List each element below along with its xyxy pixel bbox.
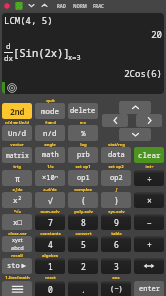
button[interactable]: − [134,214,164,230]
other: Scroll down [27,1,36,10]
staticText: 20 [2,28,162,40]
staticText: num-solv [40,209,60,215]
button[interactable]: % [68,125,98,141]
button[interactable]: 4 [35,236,65,252]
staticText: set op1 [75,164,91,170]
staticText: LCM(4, 5) [4,14,53,26]
staticText: quit [46,98,55,104]
button[interactable]: delete [68,103,98,119]
staticText: 2Cos(6) [2,67,162,79]
button[interactable]: x□ [2,214,32,230]
staticText: NORM [73,3,87,9]
staticText: int÷ [145,164,154,170]
staticText: n/d◄►Un/d [5,120,29,126]
staticText: x=3 [68,53,81,63]
button[interactable]: 0 [35,281,65,296]
staticText: 5 [81,239,86,250]
button[interactable]: math [35,147,65,163]
button[interactable]: 8 [68,214,98,230]
button[interactable]: op2 [101,170,131,186]
button[interactable]: ) [101,192,131,208]
button[interactable]: clear [134,147,164,163]
staticText: 6 [114,239,119,250]
staticText: abcd [11,244,24,252]
button[interactable]: Un/d [2,125,32,141]
button[interactable]: matrix [2,147,32,163]
button[interactable]: prb [68,147,98,163]
button[interactable]: op1 [68,170,98,186]
staticText: reset [45,275,56,281]
staticText: − [147,217,152,228]
staticText: FRAC [93,3,104,9]
staticText: x² [13,195,22,205]
button[interactable]: + [134,236,164,252]
staticText: constants [40,231,61,237]
button[interactable]: 2nd [2,103,32,119]
button[interactable]: enter [134,281,164,296]
button[interactable]: 9 [101,214,131,230]
staticText: n/d [43,128,57,138]
staticText: clear-var [8,231,27,237]
staticText: 7 [48,217,53,228]
staticText: × [147,195,152,206]
staticText: ∫ [115,187,118,192]
button[interactable]: π [2,170,32,186]
staticText: vector [10,142,24,148]
button[interactable]: (−) [101,281,131,296]
staticText: 2 [81,261,86,272]
staticText: 0 [48,284,53,295]
other: Scroll up [40,1,49,10]
staticText: data [108,150,125,160]
button[interactable]: History [7,83,17,93]
staticText: 8 [81,217,86,228]
staticText: 3 [114,261,119,272]
button[interactable]: √ [35,192,65,208]
staticText: log [80,142,87,148]
staticText: [Sin(2x)] [13,46,70,60]
staticText: + [147,239,152,250]
staticText: 9 [114,217,119,228]
staticText: complex [74,187,92,193]
button[interactable]: 3 [101,258,131,274]
button[interactable]: mode [35,103,65,119]
button[interactable]: data [101,147,131,163]
button[interactable]: Toggle mathprint [2,281,32,296]
button[interactable]: 1 [35,258,65,274]
staticText: dx [4,53,13,63]
button[interactable]: 5 [68,236,98,252]
staticText: ⁿ√x [14,209,21,215]
staticText: op1 [77,173,90,183]
button[interactable]: Left [102,114,128,127]
button[interactable]: Toggle answer [134,258,164,274]
button[interactable]: ( [68,192,98,208]
staticText: 1 [48,261,53,272]
button[interactable]: Up [119,101,151,114]
button[interactable]: Down [119,128,151,141]
staticText: prb [77,150,90,160]
button[interactable]: ×10ⁿ [35,170,65,186]
staticText: 1-line/math [5,275,30,281]
staticText: ÷ [147,173,152,184]
button[interactable]: 6 [101,236,131,252]
button[interactable]: xyzt [2,236,32,252]
staticText: % [81,128,86,138]
button[interactable]: × [134,192,164,208]
button[interactable]: ÷ [134,170,164,186]
staticText: ►x [80,120,86,126]
staticText: mode [41,106,59,116]
button[interactable]: x² [2,192,32,208]
staticText: f◄►d [45,120,56,126]
button[interactable]: 2 [68,258,98,274]
button[interactable]: 7 [35,214,65,230]
staticText: stat/reg [108,142,125,148]
button[interactable]: . [68,281,98,296]
staticText: angle [44,142,56,148]
button[interactable]: Right [136,114,162,127]
button[interactable]: n/d [35,125,65,141]
staticText: recall [11,253,23,259]
staticText: d [6,41,11,51]
staticText: sys-solv [108,209,125,215]
staticText: Un/d [8,128,26,138]
staticText: matrix [6,151,29,160]
button[interactable]: sto▶ [2,258,32,274]
